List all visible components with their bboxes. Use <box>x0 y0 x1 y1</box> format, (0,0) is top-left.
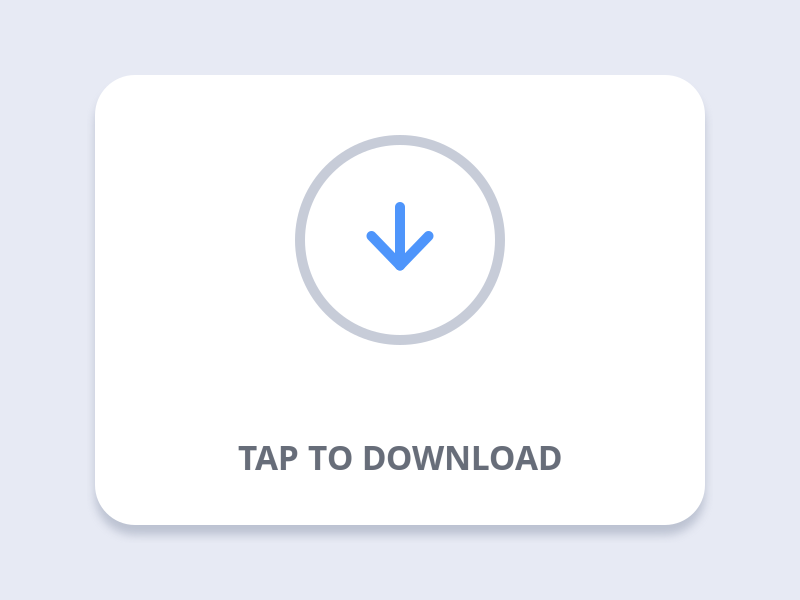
staticText: TAP TO DOWNLOAD <box>238 435 562 479</box>
button[interactable]: Tap to download <box>95 75 705 525</box>
